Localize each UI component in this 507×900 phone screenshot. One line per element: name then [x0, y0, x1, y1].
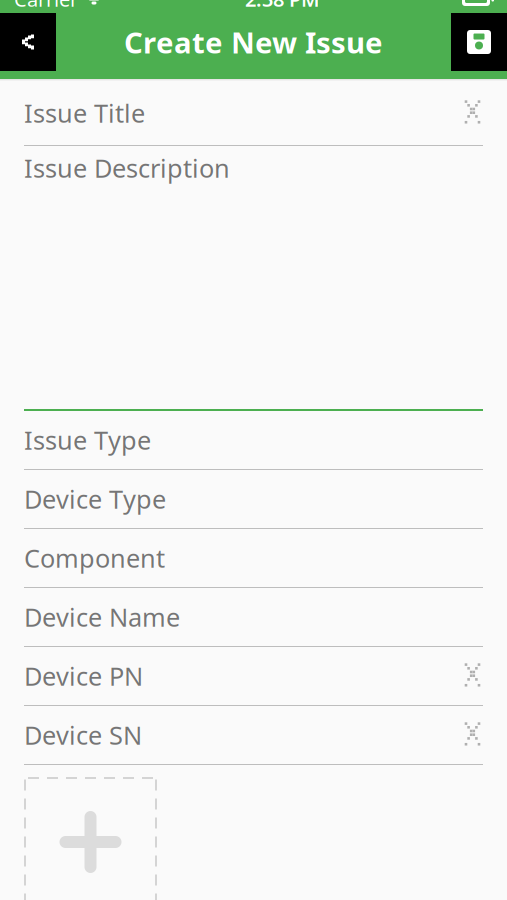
- button[interactable]: Device SN: [0, 706, 507, 765]
- staticText: Issue Title: [24, 96, 145, 130]
- staticText: Create New Issue: [124, 22, 383, 61]
- staticText: Device Type: [24, 482, 166, 516]
- button[interactable]: Save: [451, 13, 507, 71]
- button[interactable]: Clear Issue Title: [462, 102, 483, 123]
- staticText: Carrier: [14, 0, 78, 12]
- button[interactable]: Device Type: [0, 470, 507, 529]
- button[interactable]: Back: [0, 13, 56, 71]
- button[interactable]: Device PN: [0, 647, 507, 706]
- button[interactable]: Issue Type: [0, 411, 507, 470]
- staticText: Device Name: [24, 600, 180, 634]
- staticText: Device PN: [24, 659, 143, 693]
- staticText: Issue Description: [24, 151, 230, 185]
- staticText: Device SN: [24, 718, 142, 752]
- staticText: Component: [24, 541, 165, 575]
- button[interactable]: Add photo: [24, 777, 157, 900]
- staticText: Issue Type: [24, 423, 151, 457]
- button[interactable]: Component: [0, 529, 507, 588]
- staticText: 2:38 PM: [245, 0, 320, 12]
- button[interactable]: Device Name: [0, 588, 507, 647]
